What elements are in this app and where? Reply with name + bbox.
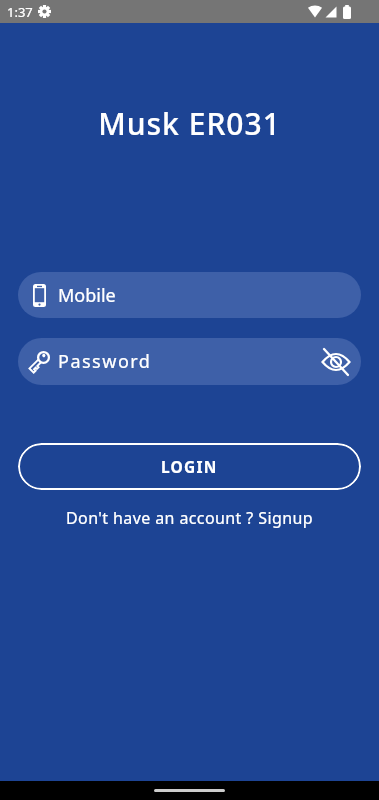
staticText: 1:37 <box>7 3 33 21</box>
staticText: Mobile <box>58 283 116 308</box>
button[interactable] <box>321 347 351 377</box>
button[interactable]: Password <box>18 338 361 385</box>
staticText: Musk ER031 <box>0 103 379 144</box>
button[interactable]: LOGIN <box>18 443 361 490</box>
button[interactable]: Don't have an account ? Signup <box>0 507 379 529</box>
staticText: LOGIN <box>161 456 218 477</box>
staticText: Password <box>58 349 321 374</box>
button[interactable]: Mobile <box>18 272 361 318</box>
